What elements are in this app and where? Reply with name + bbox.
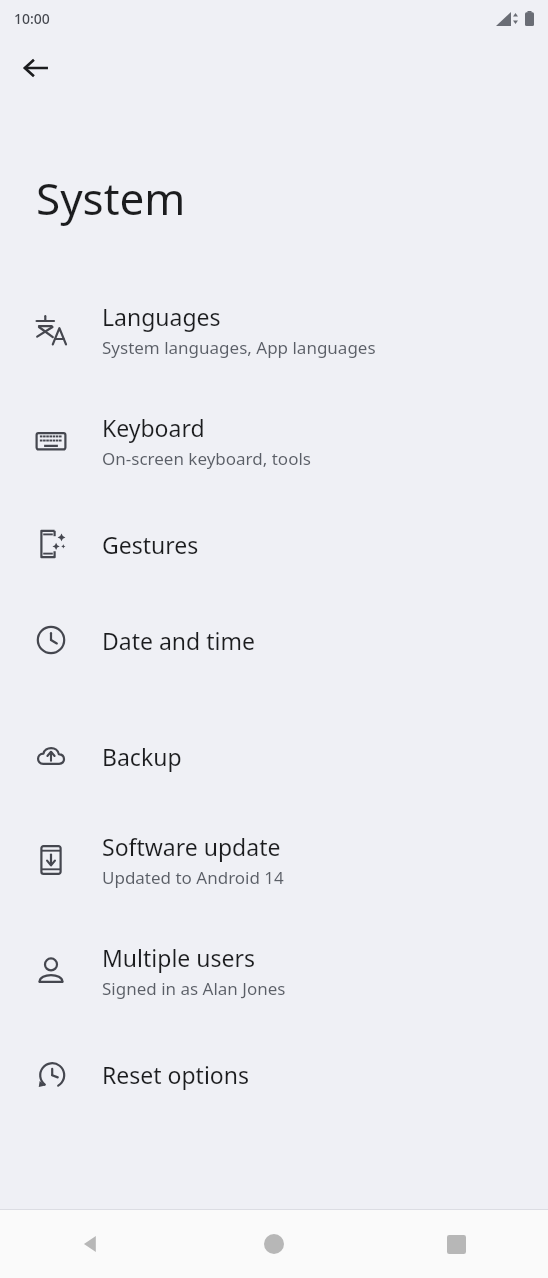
button[interactable]: Multiple users (0, 915, 548, 1026)
staticText: Signed in as Alan Jones (102, 977, 286, 1000)
button[interactable]: Gestures (0, 496, 548, 592)
button[interactable]: Keyboard (0, 385, 548, 496)
button[interactable]: Back (0, 1210, 182, 1278)
staticText: Gestures (102, 529, 199, 560)
staticText: Software update (102, 831, 281, 862)
staticText: 10:00 (14, 9, 50, 28)
staticText: Backup (102, 741, 182, 772)
staticText: System languages, App languages (102, 336, 376, 359)
button[interactable]: Back (10, 42, 62, 94)
button[interactable]: Date and time (0, 592, 548, 688)
button[interactable]: Reset options (0, 1026, 548, 1122)
staticText: Languages (102, 301, 221, 332)
staticText: Reset options (102, 1059, 249, 1090)
staticText: Keyboard (102, 412, 205, 443)
button[interactable]: Backup (0, 708, 548, 804)
staticText: Date and time (102, 625, 255, 656)
button[interactable]: Software update (0, 804, 548, 915)
button[interactable]: Languages (0, 274, 548, 385)
button[interactable]: Home (182, 1210, 365, 1278)
staticText: Multiple users (102, 942, 255, 973)
staticText: Updated to Android 14 (102, 866, 284, 889)
staticText: On-screen keyboard, tools (102, 447, 311, 470)
staticText: System (36, 168, 186, 228)
button[interactable]: Recent apps (365, 1210, 548, 1278)
